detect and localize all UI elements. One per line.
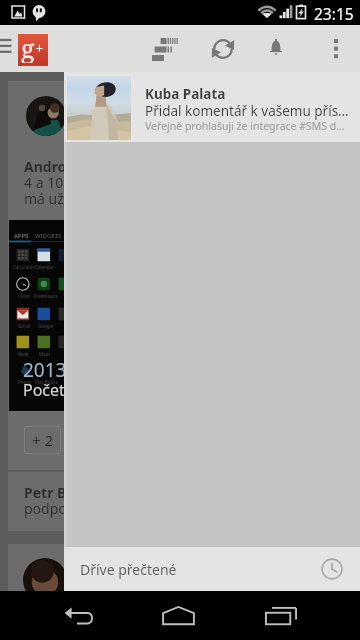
staticText: Downloads <box>34 293 58 299</box>
staticText: WIDGETS <box>35 232 62 240</box>
button[interactable]: Open navigation drawer <box>0 25 16 72</box>
staticText: Veřejně prohlašuji že integrace #SMS d… <box>145 119 345 133</box>
staticText: 4 a 10.1 palcový tablet <box>24 173 170 192</box>
staticText: g <box>21 31 35 63</box>
button[interactable]: Kuba Palata <box>64 72 360 142</box>
button[interactable]: Android <box>8 81 350 470</box>
staticText: Android <box>24 157 80 176</box>
staticText: + <box>35 37 44 59</box>
button[interactable]: Google Plus <box>18 34 48 66</box>
staticText: Kuba Palata <box>145 85 226 103</box>
staticText: Keep <box>18 351 29 357</box>
staticText: 2013 <box>23 357 67 383</box>
staticText: Google <box>38 323 54 329</box>
button[interactable]: Notifications <box>252 29 300 66</box>
staticText: má už své jméno <box>24 189 135 208</box>
staticText: Dříve přečtené <box>80 560 177 579</box>
staticText: Clock <box>18 293 30 299</box>
staticText: Phone <box>18 379 32 385</box>
button[interactable]: Stream <box>141 30 189 67</box>
button[interactable]: Refresh <box>199 30 247 67</box>
staticText: podporuji tuto myšlenku <box>24 499 187 518</box>
button[interactable]: Back <box>42 591 114 640</box>
staticText: Počet <box>23 379 65 401</box>
button[interactable]: Dříve přečtené <box>64 547 360 591</box>
staticText: Calendar <box>35 264 54 270</box>
button[interactable]: Recent apps <box>245 591 317 640</box>
staticText: Play Books <box>35 379 58 385</box>
staticText: APPS <box>14 232 29 240</box>
staticText: Přidal komentář k vašemu přís… <box>145 102 349 120</box>
button[interactable]: + 2 <box>24 426 61 454</box>
staticText: Gmail <box>18 323 31 329</box>
button[interactable]: Home <box>142 591 214 640</box>
staticText: + 2 <box>32 430 54 450</box>
staticText: Calculator <box>13 264 35 270</box>
button[interactable]: More options <box>316 30 356 67</box>
staticText: 23:15 <box>314 3 354 24</box>
staticText: Petr Beneš <box>24 483 100 502</box>
button[interactable]: Petr Beneš <box>8 472 350 531</box>
button[interactable] <box>8 544 350 640</box>
staticText: Maps <box>39 351 51 357</box>
